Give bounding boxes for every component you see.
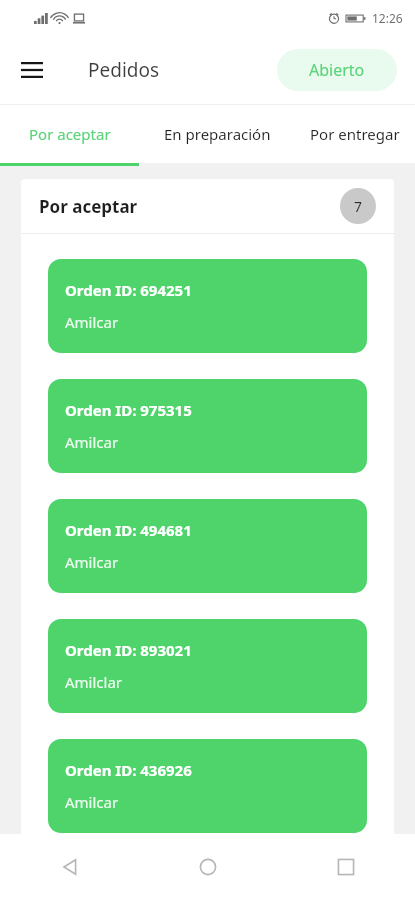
button[interactable]: Orden ID: 893021 <box>48 619 367 713</box>
staticText: Amilcar <box>65 552 119 572</box>
staticText: 12:26 <box>372 10 403 26</box>
staticText: Amilcar <box>65 312 119 332</box>
button[interactable]: Abierto <box>277 49 397 91</box>
button[interactable]: Orden ID: 436926 <box>48 739 367 833</box>
staticText: Orden ID: 893021 <box>65 640 192 660</box>
button[interactable]: Orden ID: 494681 <box>48 499 367 593</box>
button[interactable]: Home <box>139 834 277 900</box>
staticText: Amilcar <box>65 432 119 452</box>
staticText: En preparación <box>164 124 271 144</box>
staticText: Orden ID: 494681 <box>65 520 192 540</box>
button[interactable]: Back <box>0 834 139 900</box>
staticText: Por aceptar <box>29 124 111 144</box>
button[interactable]: Open navigation menu <box>14 52 50 88</box>
button[interactable]: En preparación <box>139 105 295 163</box>
staticText: Pedidos <box>88 57 160 83</box>
button[interactable]: Por aceptar <box>0 105 139 163</box>
staticText: Amilcar <box>65 792 119 812</box>
staticText: Orden ID: 975315 <box>65 400 192 420</box>
staticText: Orden ID: 436926 <box>65 760 192 780</box>
staticText: Amilclar <box>65 672 123 692</box>
staticText: Por aceptar <box>39 195 138 218</box>
staticText: Orden ID: 694251 <box>65 280 192 300</box>
button[interactable]: Orden ID: 694251 <box>48 259 367 353</box>
button[interactable]: Orden ID: 975315 <box>48 379 367 473</box>
button[interactable]: Recent apps <box>277 834 415 900</box>
button[interactable]: Por entregar <box>295 105 415 163</box>
staticText: Abierto <box>309 59 365 81</box>
staticText: Por entregar <box>310 124 400 144</box>
staticText: 7 <box>354 197 363 216</box>
